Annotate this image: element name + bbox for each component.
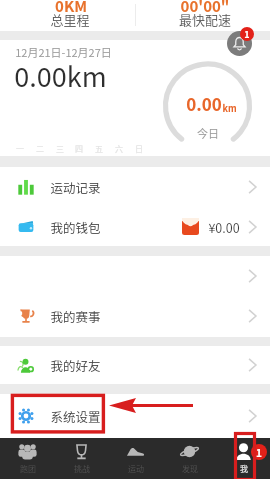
staticText: 三: [56, 143, 64, 155]
staticText: 挑战: [74, 463, 90, 475]
button[interactable]: 跑团: [0, 438, 54, 479]
staticText: 最快配速: [145, 10, 265, 29]
staticText: 总里程: [10, 10, 130, 29]
staticText: 0KM: [11, 0, 131, 17]
staticText: ¥0.00: [208, 218, 240, 236]
staticText: km: [222, 102, 237, 115]
staticText: 0.00km: [14, 56, 107, 95]
button[interactable]: Notifications: [226, 29, 254, 57]
button[interactable]: 挑战: [54, 438, 108, 479]
staticText: 四: [75, 143, 83, 155]
staticText: 12月21日-12月27日: [15, 44, 112, 60]
staticText: 发现: [182, 463, 198, 475]
button[interactable]: 系统设置: [0, 394, 270, 437]
staticText: 二: [36, 143, 44, 155]
staticText: 跑团: [20, 463, 36, 475]
staticText: 运动: [128, 463, 144, 475]
button[interactable]: 运动: [108, 438, 162, 479]
staticText: 六: [115, 143, 123, 155]
staticText: 我的赛事: [50, 307, 101, 325]
button[interactable]: 我的赛事: [0, 295, 270, 337]
button[interactable]: 运动记录: [0, 167, 270, 207]
staticText: 我的钱包: [50, 218, 101, 236]
staticText: 日: [135, 143, 143, 155]
staticText: 1: [244, 28, 250, 41]
staticText: 0.00: [186, 91, 222, 116]
staticText: 运动记录: [50, 178, 101, 196]
button[interactable]: 我的钱包: [0, 207, 270, 246]
button[interactable]: 我的好友: [0, 346, 270, 384]
staticText: 五: [95, 143, 103, 155]
staticText: 00'00": [145, 0, 265, 17]
staticText: 1: [256, 445, 262, 459]
staticText: 一: [16, 143, 24, 155]
staticText: 今日: [186, 125, 230, 141]
button[interactable]: 发现: [162, 438, 216, 479]
staticText: 系统设置: [50, 407, 101, 425]
button[interactable]: Stats: [0, 0, 270, 31]
button[interactable]: 我: [216, 438, 270, 479]
staticText: 我: [240, 463, 248, 475]
staticText: 我的好友: [50, 356, 101, 374]
